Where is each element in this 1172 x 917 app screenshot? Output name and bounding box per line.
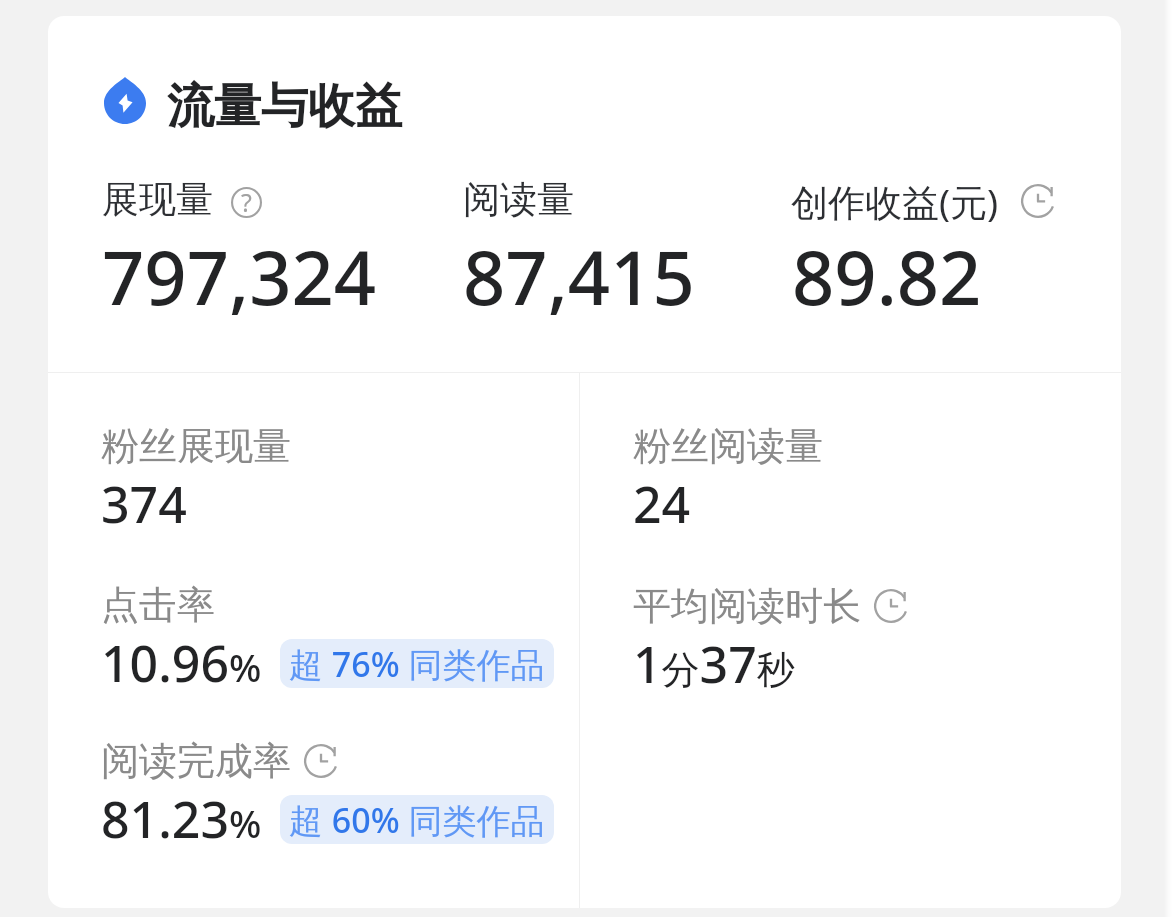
staticText: 超 76% 同类作品 [289, 641, 545, 687]
button[interactable] [96, 170, 396, 320]
other: History [304, 744, 340, 778]
button[interactable] [96, 731, 566, 851]
staticText: 流量与收益 [167, 77, 402, 136]
staticText: ? [241, 185, 252, 216]
staticText: 粉丝展现量 [101, 422, 291, 470]
staticText: 展现量 [102, 176, 213, 223]
staticText: 797,324 [102, 226, 377, 327]
staticText: 点击率 [101, 581, 215, 629]
staticText: 粉丝阅读量 [633, 422, 823, 470]
button[interactable]: 超 76% 同类作品 [280, 639, 554, 688]
button[interactable] [96, 416, 526, 536]
staticText: 81.23% [101, 785, 262, 853]
button[interactable] [460, 170, 740, 320]
button[interactable] [96, 575, 566, 695]
other: History [1021, 184, 1057, 218]
staticText: 阅读完成率 [101, 737, 291, 785]
staticText: 374 [101, 470, 187, 538]
staticText: 阅读量 [463, 176, 574, 223]
other: Help [231, 187, 262, 218]
other: History [874, 589, 910, 623]
button[interactable] [628, 576, 1058, 696]
staticText: 89.82 [792, 226, 982, 327]
staticText: 24 [633, 470, 691, 538]
staticText: 平均阅读时长 [633, 582, 861, 630]
button[interactable] [628, 416, 1058, 536]
staticText: 10.96% [101, 629, 262, 697]
staticText: 超 60% 同类作品 [289, 797, 545, 843]
button[interactable]: 流量与收益 [104, 77, 402, 136]
staticText: 创作收益(元) [791, 176, 999, 227]
button[interactable] [788, 170, 1068, 320]
staticText: 1分37秒 [633, 630, 795, 698]
button[interactable]: 超 60% 同类作品 [280, 795, 554, 844]
staticText: 87,415 [463, 226, 695, 327]
